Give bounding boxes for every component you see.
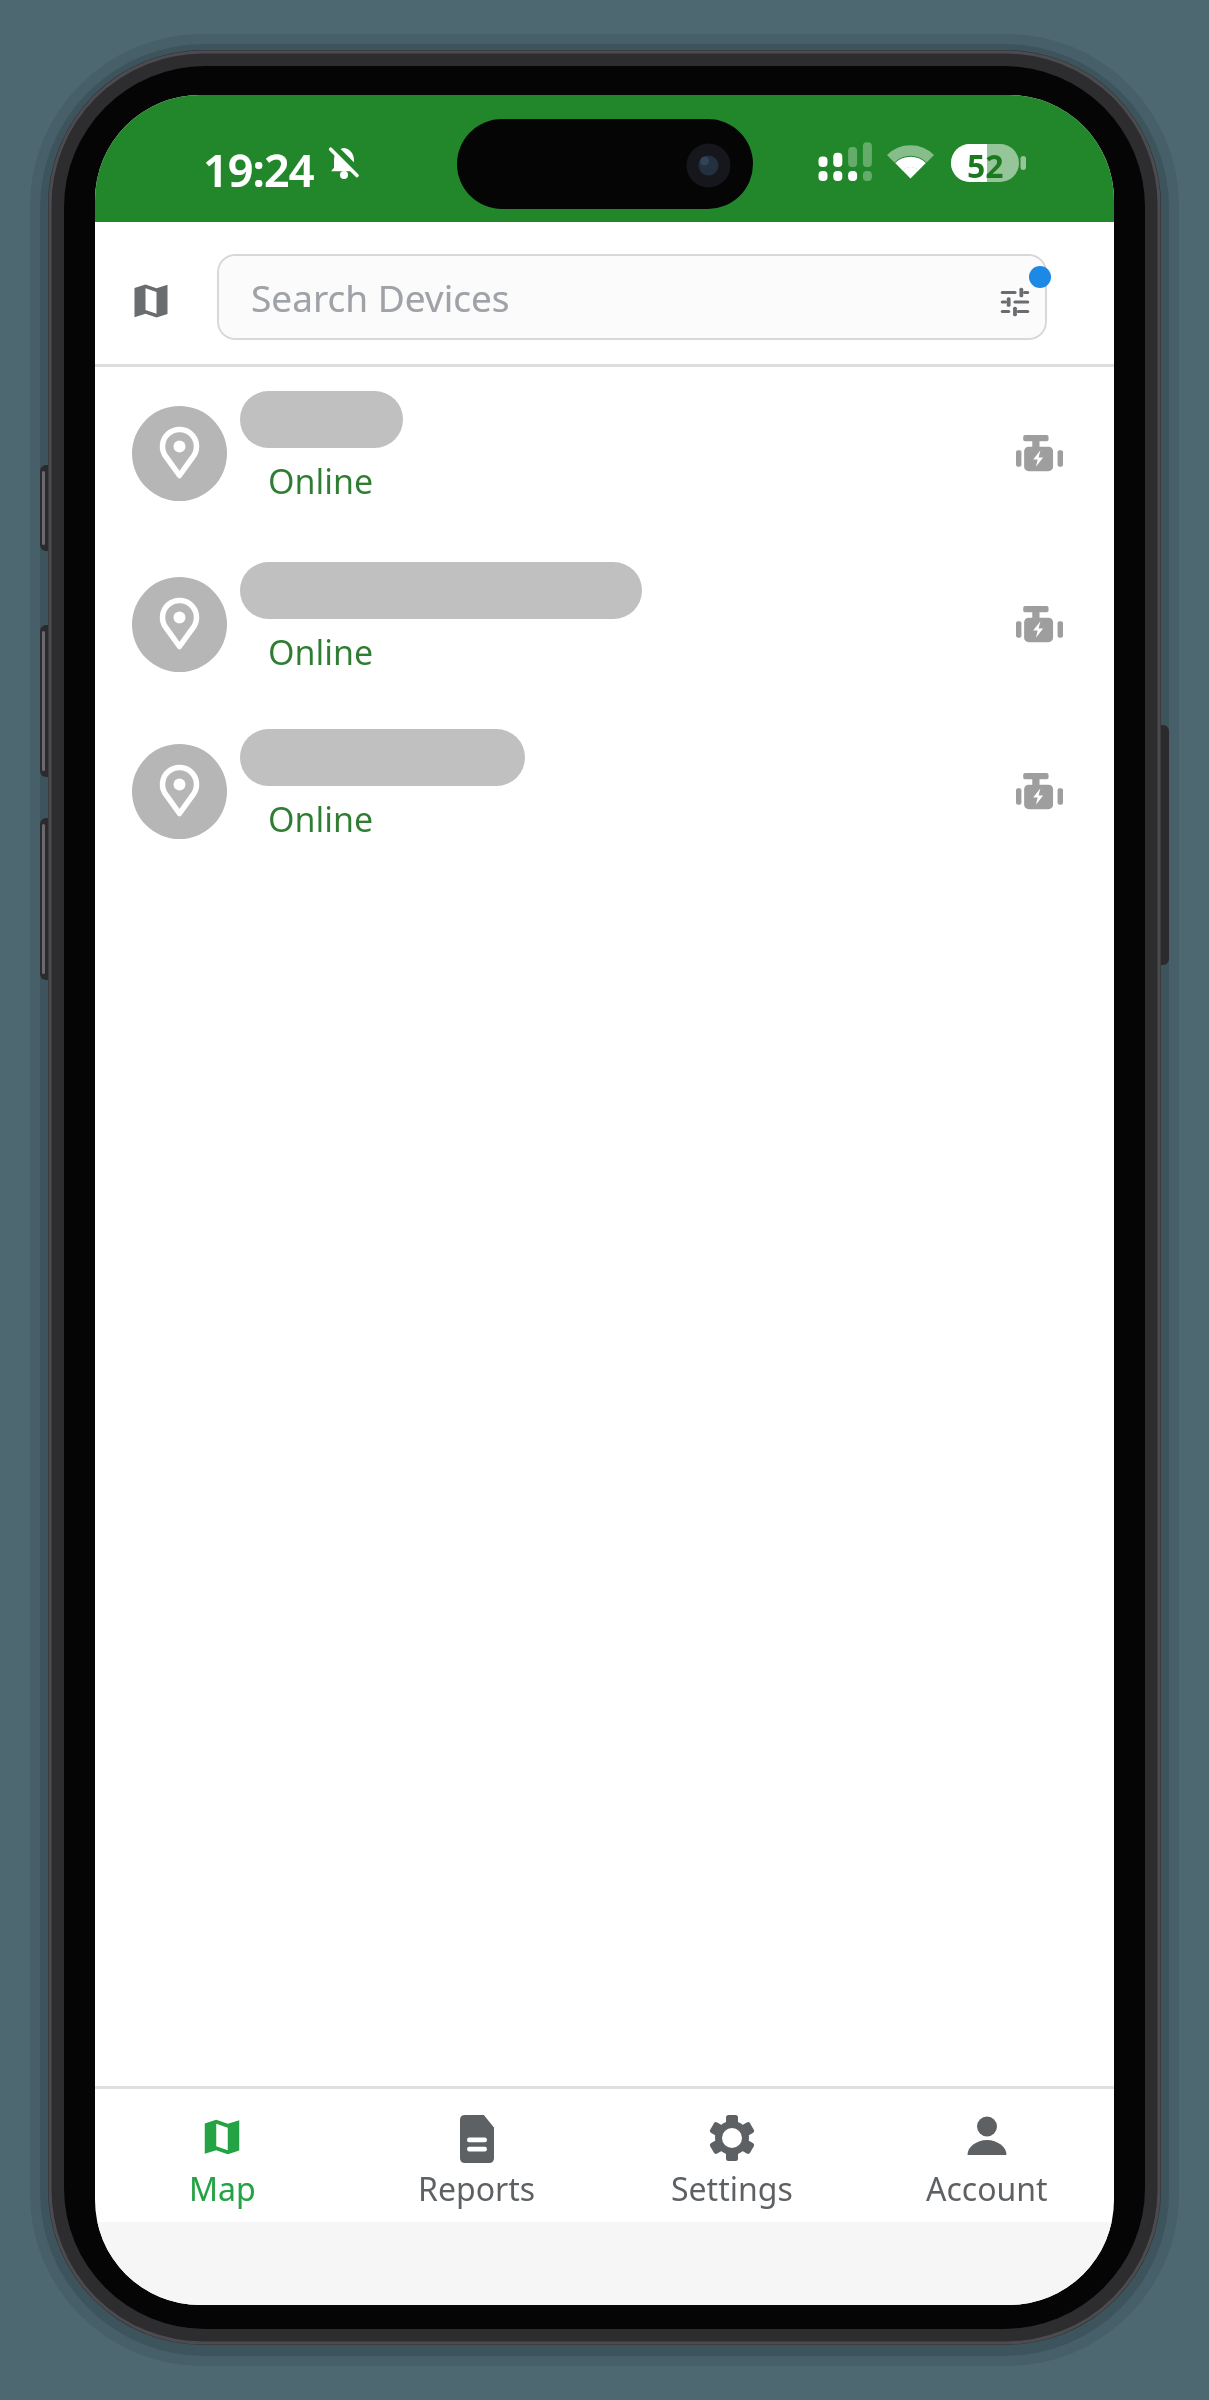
staticText: Settings [671,2167,793,2211]
button[interactable] [95,716,1114,866]
button[interactable] [357,2091,597,2216]
staticText: Online [268,629,374,675]
staticText: Map [189,2167,256,2211]
staticText: Search Devices [251,272,510,322]
staticText: 52 [967,144,1004,182]
button[interactable] [996,283,1034,321]
button[interactable] [102,2091,342,2216]
staticText: Online [268,796,374,842]
staticText: Account [926,2167,1048,2211]
staticText: 19:24 [203,139,314,200]
staticText: Reports [418,2167,536,2211]
button[interactable] [95,378,1114,528]
button[interactable]: Search Devices [217,254,1047,340]
button[interactable] [867,2091,1107,2216]
button[interactable] [95,549,1114,699]
staticText: Online [268,458,374,504]
button[interactable] [612,2091,852,2216]
